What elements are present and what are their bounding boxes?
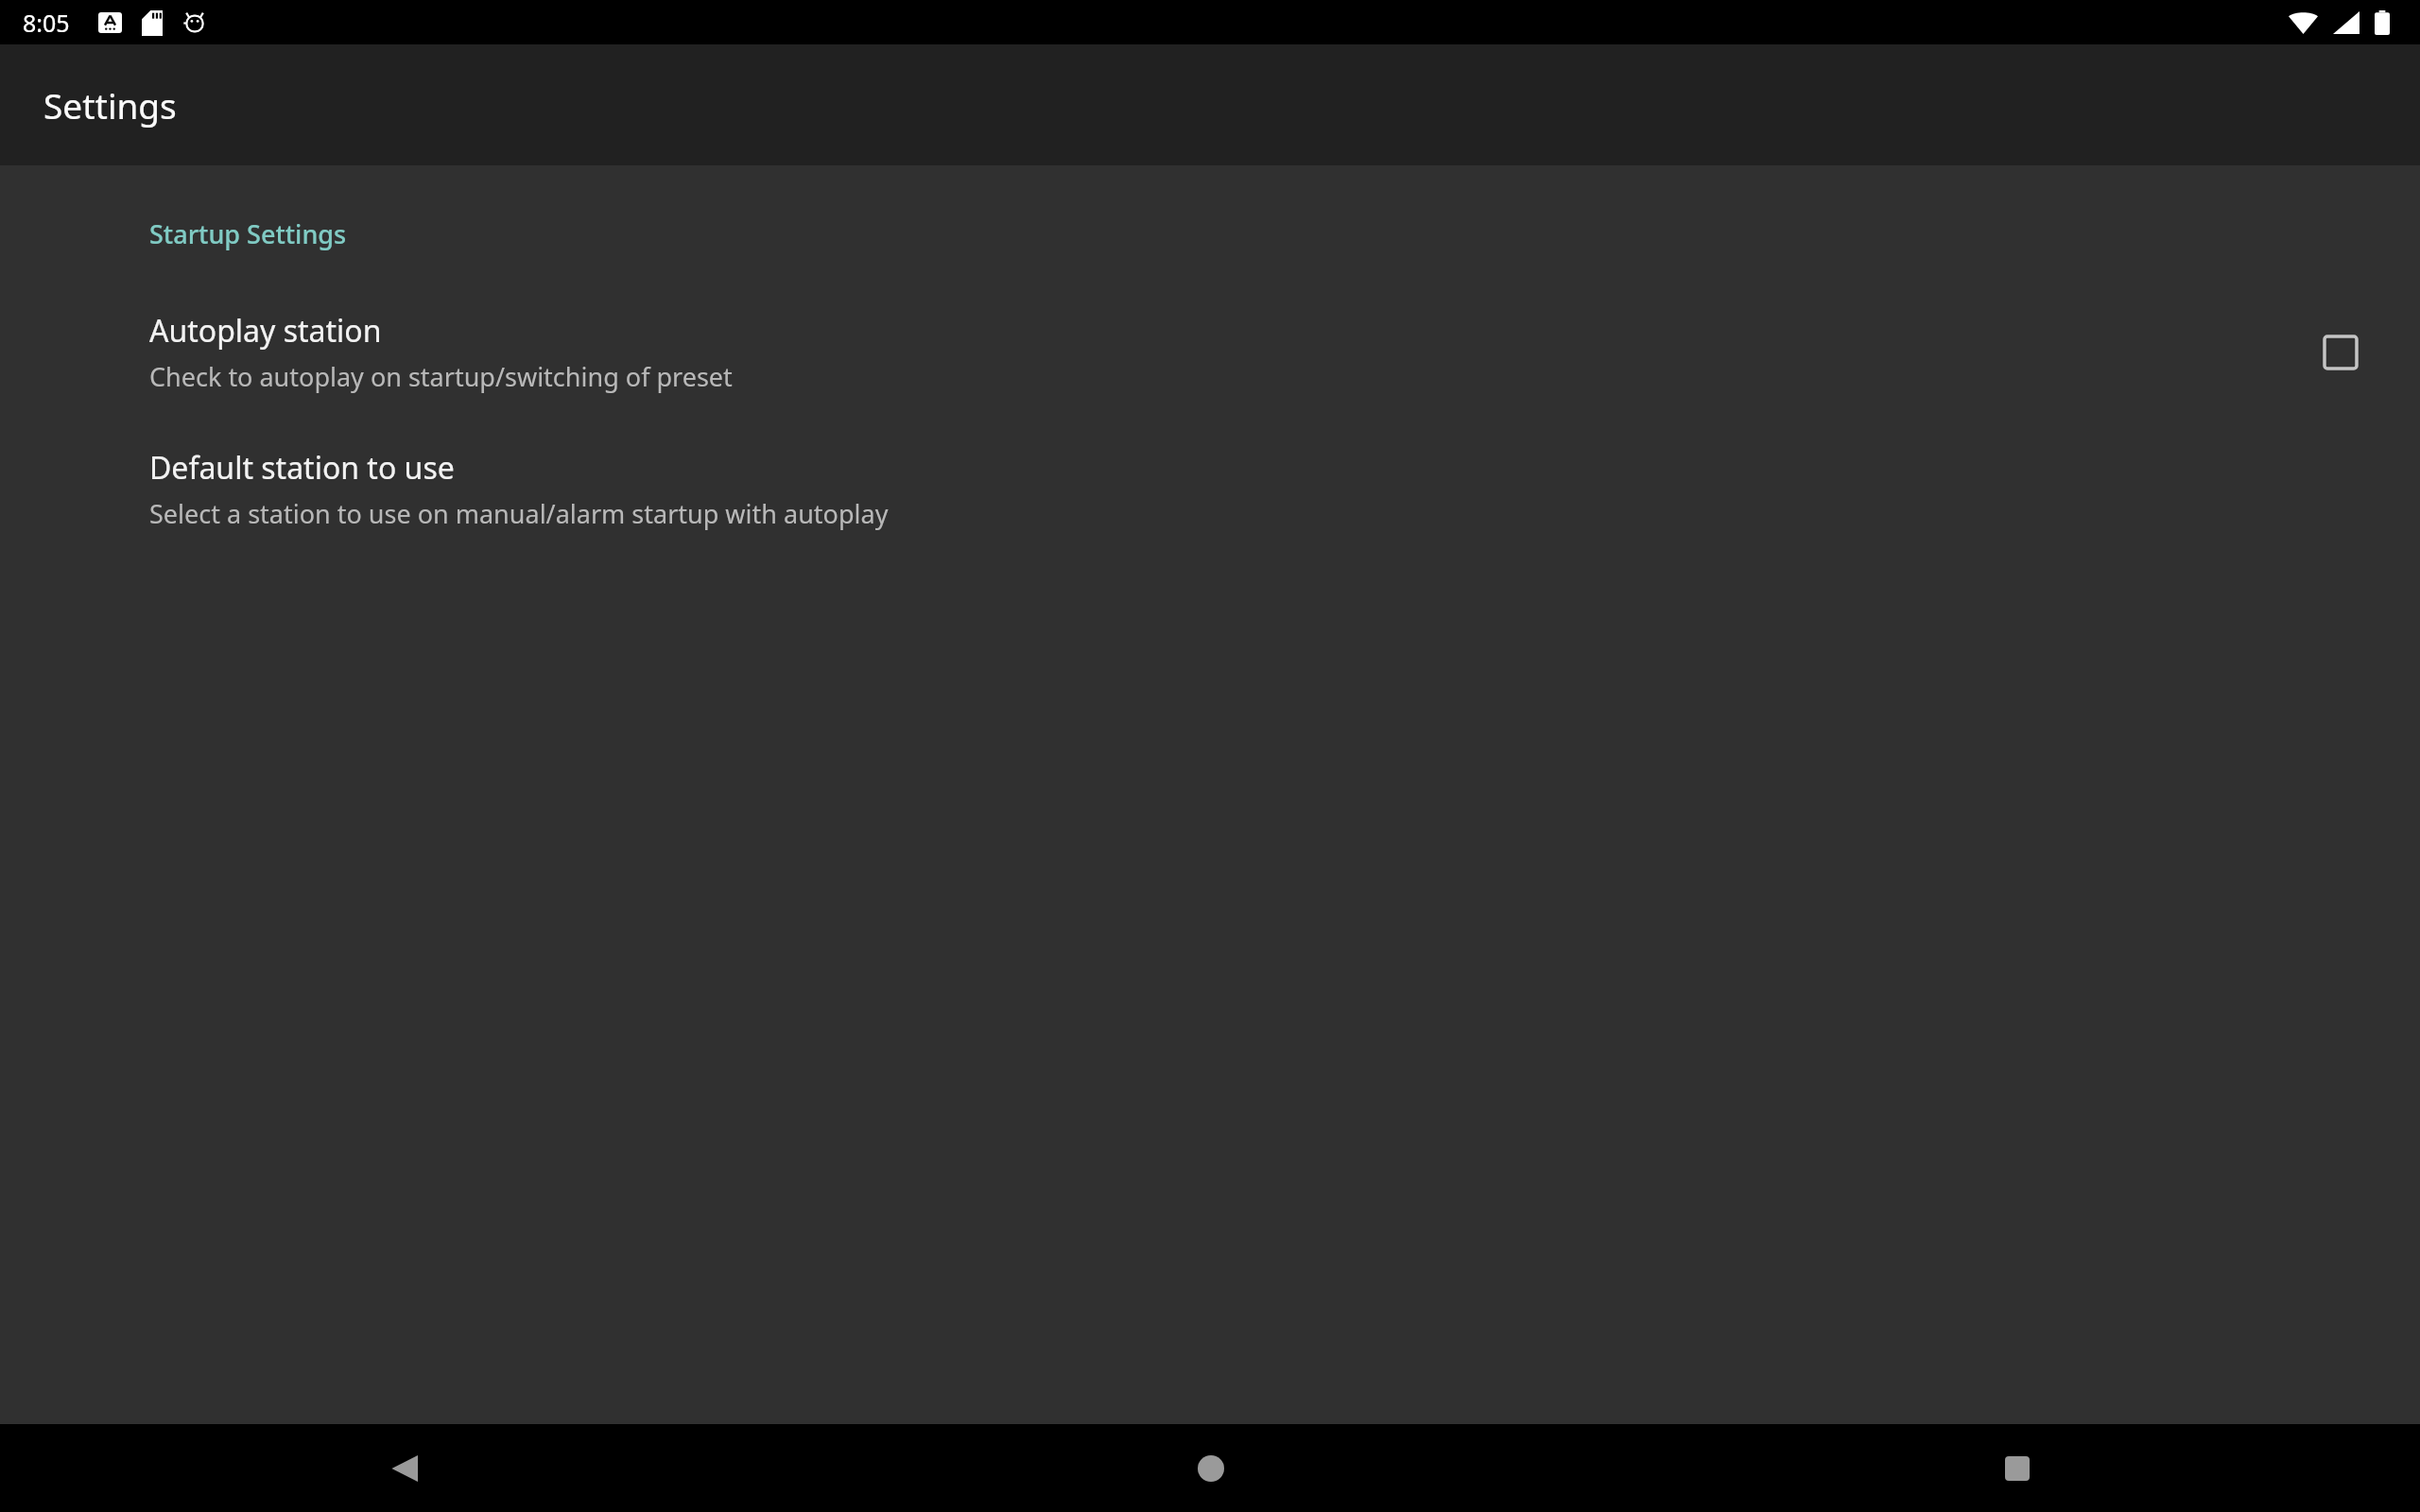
staticText: Check to autoplay on startup/switching o… (149, 359, 733, 394)
staticText: 8:05 (23, 7, 70, 39)
button[interactable]: Autoplay station checkbox (2307, 318, 2375, 387)
staticText: Settings (43, 81, 177, 129)
button[interactable]: Recent apps (1614, 1424, 2420, 1512)
staticText: Startup Settings (149, 216, 347, 251)
staticText: Default station to use (149, 447, 455, 489)
staticText: Select a station to use on manual/alarm … (149, 496, 889, 531)
button[interactable]: Back (0, 1424, 807, 1512)
button[interactable]: Default station to use (0, 421, 2420, 558)
staticText: Autoplay station (149, 310, 382, 352)
button[interactable]: Home (807, 1424, 1614, 1512)
button[interactable]: Autoplay station (0, 283, 2420, 421)
